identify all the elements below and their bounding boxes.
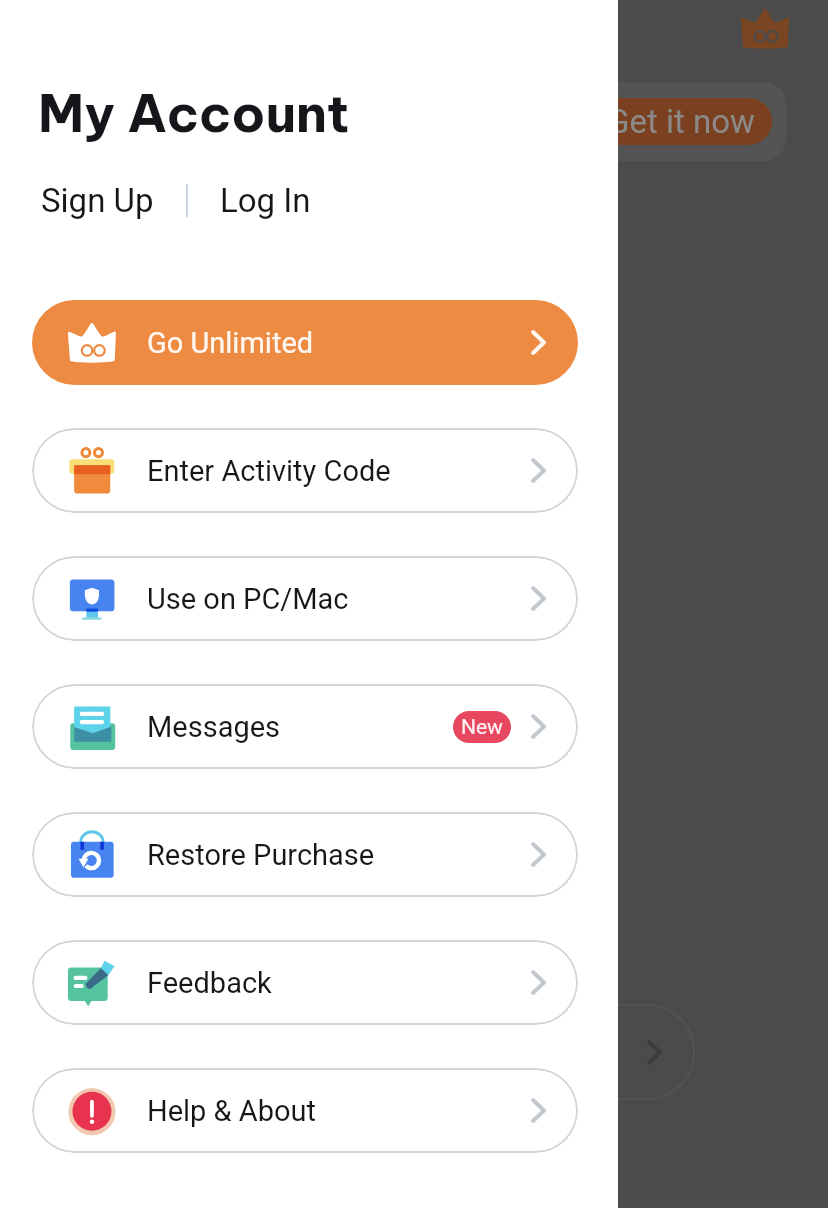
staticText: Log In [220, 181, 311, 220]
button[interactable]: Restore Purchase [32, 812, 578, 897]
button[interactable]: Enter Activity Code [32, 428, 578, 513]
staticText: Sign Up [41, 181, 154, 220]
staticText: Get it now [607, 102, 755, 141]
staticText: Feedback [147, 966, 272, 1000]
staticText: Go Unlimited [147, 326, 314, 360]
button[interactable]: Get it now [540, 98, 772, 145]
staticText: Enter Activity Code [147, 454, 391, 488]
staticText: Messages [147, 710, 281, 744]
button[interactable]: Help & About [32, 1068, 578, 1153]
button[interactable]: Feedback [32, 940, 578, 1025]
button[interactable]: Use on PC/Mac [32, 556, 578, 641]
staticText: Use on PC/Mac [147, 582, 349, 616]
button[interactable]: Premium [741, 5, 789, 53]
button[interactable]: Go Unlimited [32, 300, 578, 385]
button[interactable] [560, 1004, 695, 1100]
staticText: My Account [38, 80, 350, 146]
staticText: Restore Purchase [147, 838, 375, 872]
button[interactable]: Log In [188, 172, 337, 229]
other: Open [647, 1040, 662, 1065]
button[interactable]: Sign Up [0, 172, 186, 229]
button[interactable]: Messages [32, 684, 578, 769]
staticText: New [461, 715, 503, 740]
staticText: Help & About [147, 1094, 317, 1128]
